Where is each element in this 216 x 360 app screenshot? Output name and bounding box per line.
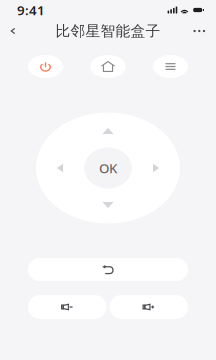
staticText: 9:41 [17,1,45,19]
button[interactable]: Left [49,154,71,182]
button[interactable]: Power [28,55,63,78]
button[interactable]: Home [90,55,125,78]
button[interactable]: Back [0,22,27,40]
button[interactable]: More [182,22,216,40]
button[interactable]: Back [28,258,188,281]
button[interactable]: Volume up [109,295,188,319]
button[interactable]: Menu [153,55,188,78]
button[interactable]: Down [94,194,122,216]
button[interactable]: OK [84,147,132,188]
staticText: OK [99,159,117,177]
button[interactable]: Up [94,120,122,142]
staticText: 比邻星智能盒子 [55,22,160,40]
button[interactable]: Right [145,154,167,182]
button[interactable]: Volume down [28,295,106,319]
